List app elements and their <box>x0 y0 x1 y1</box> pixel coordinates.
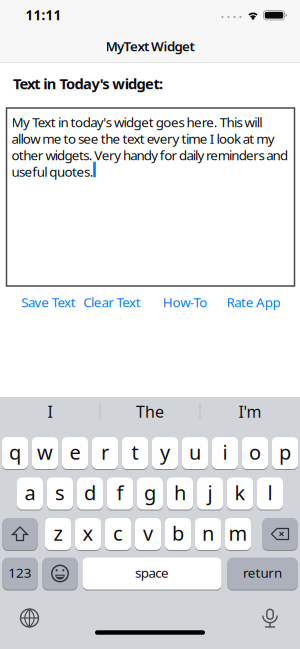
staticText: Rate App <box>226 293 280 311</box>
button[interactable] <box>6 108 294 286</box>
staticText: c <box>113 520 123 546</box>
staticText: How-To <box>163 293 207 311</box>
button[interactable]: z <box>45 518 71 550</box>
button[interactable]: How-To <box>163 293 207 311</box>
staticText: allow me to see the text every time I lo… <box>11 130 275 147</box>
button[interactable]: space <box>82 557 221 589</box>
button[interactable] <box>262 518 297 550</box>
staticText: t <box>131 439 138 465</box>
staticText: s <box>55 479 65 506</box>
button[interactable]: o <box>242 437 268 469</box>
staticText: other widgets. Very handy for daily remi… <box>11 146 288 164</box>
staticText: Save Text <box>21 293 76 311</box>
staticText: p <box>279 439 291 465</box>
button[interactable]: Clear Text <box>83 293 141 311</box>
staticText: The <box>136 401 164 422</box>
button[interactable]: n <box>195 518 221 550</box>
staticText: u <box>189 439 201 465</box>
staticText: b <box>172 520 184 546</box>
staticText: j <box>207 479 212 506</box>
button[interactable] <box>42 557 77 589</box>
button[interactable]: Rate App <box>226 293 280 311</box>
staticText: e <box>69 439 80 465</box>
button[interactable]: k <box>227 477 253 509</box>
button[interactable]: c <box>105 518 131 550</box>
staticText: k <box>234 479 245 506</box>
staticText: o <box>249 439 261 465</box>
button[interactable]: d <box>77 477 103 509</box>
staticText: Text in Today's widget: <box>13 74 163 93</box>
staticText: I <box>47 401 52 422</box>
staticText: MyText Widget <box>105 37 194 55</box>
staticText: space <box>135 564 169 581</box>
staticText: a <box>24 479 35 506</box>
staticText: v <box>143 520 153 546</box>
button[interactable]: t <box>122 437 148 469</box>
button[interactable]: The <box>102 396 198 426</box>
staticText: w <box>37 439 53 465</box>
button[interactable]: v <box>135 518 161 550</box>
staticText: x <box>82 520 93 546</box>
button[interactable]: u <box>182 437 208 469</box>
button[interactable]: w <box>32 437 58 469</box>
staticText: g <box>144 479 156 506</box>
button[interactable]: I'm <box>202 396 298 426</box>
button[interactable]: i <box>212 437 238 469</box>
staticText: i <box>222 439 227 465</box>
staticText: f <box>116 479 123 506</box>
button[interactable]: h <box>167 477 193 509</box>
staticText: d <box>84 479 96 506</box>
button[interactable]: x <box>75 518 101 550</box>
staticText: h <box>174 479 186 506</box>
button[interactable]: j <box>197 477 223 509</box>
button[interactable]: y <box>152 437 178 469</box>
staticText: 11:11 <box>25 6 61 24</box>
button[interactable]: r <box>92 437 118 469</box>
button[interactable] <box>15 604 43 632</box>
button[interactable]: q <box>2 437 28 469</box>
button[interactable]: Save Text <box>21 293 76 311</box>
button[interactable]: I <box>2 396 98 426</box>
staticText: q <box>9 439 21 465</box>
button[interactable]: p <box>272 437 298 469</box>
staticText: y <box>160 439 170 465</box>
button[interactable]: g <box>137 477 163 509</box>
staticText: 123 <box>8 564 32 581</box>
staticText: z <box>53 520 62 546</box>
staticText: My Text in today's widget goes here. Thi… <box>11 113 262 131</box>
staticText: useful quotes. <box>11 163 94 180</box>
button[interactable]: s <box>47 477 73 509</box>
button[interactable]: a <box>17 477 43 509</box>
staticText: n <box>202 520 214 546</box>
button[interactable]: l <box>257 477 283 509</box>
staticText: Clear Text <box>83 293 141 311</box>
button[interactable]: m <box>225 518 251 550</box>
button[interactable] <box>256 603 284 631</box>
button[interactable]: f <box>107 477 133 509</box>
staticText: l <box>267 479 272 506</box>
staticText: m <box>228 520 247 546</box>
button[interactable] <box>2 518 37 550</box>
button[interactable]: e <box>62 437 88 469</box>
staticText: return <box>243 564 282 581</box>
staticText: r <box>101 439 109 465</box>
button[interactable]: return <box>227 557 297 589</box>
staticText: I'm <box>238 401 261 422</box>
button[interactable]: 123 <box>2 557 37 589</box>
button[interactable]: b <box>165 518 191 550</box>
